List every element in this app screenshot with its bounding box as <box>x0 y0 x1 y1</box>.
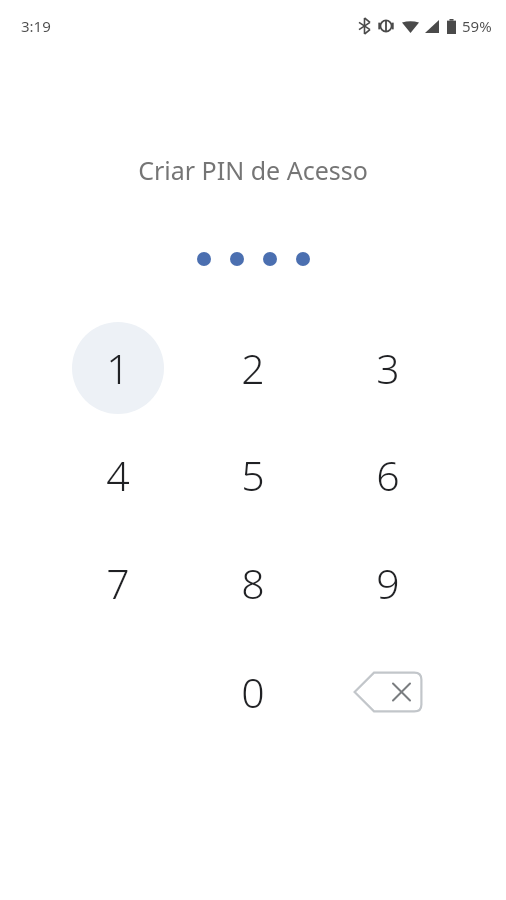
staticText: 59% <box>462 16 492 36</box>
staticText: 4 <box>106 447 130 503</box>
staticText: 6 <box>376 447 400 503</box>
button[interactable]: 7 <box>72 537 164 629</box>
button[interactable]: 8 <box>207 537 299 629</box>
button[interactable]: 1 <box>72 322 164 414</box>
staticText: 1 <box>106 340 130 396</box>
staticText: 0 <box>241 664 265 720</box>
staticText: 2 <box>241 340 265 396</box>
staticText: 8 <box>241 555 265 611</box>
button[interactable]: 6 <box>342 429 434 521</box>
button[interactable]: 2 <box>207 322 299 414</box>
button[interactable]: 3 <box>342 322 434 414</box>
staticText: 7 <box>106 555 130 611</box>
button[interactable]: 0 <box>207 646 299 738</box>
button[interactable]: 4 <box>72 429 164 521</box>
staticText: 9 <box>376 555 400 611</box>
button[interactable]: Backspace <box>342 646 434 738</box>
staticText: Criar PIN de Acesso <box>0 153 506 187</box>
staticText: 3:19 <box>21 16 51 36</box>
staticText: 5 <box>241 447 265 503</box>
staticText: 3 <box>376 340 400 396</box>
button[interactable]: 9 <box>342 537 434 629</box>
button[interactable]: 5 <box>207 429 299 521</box>
